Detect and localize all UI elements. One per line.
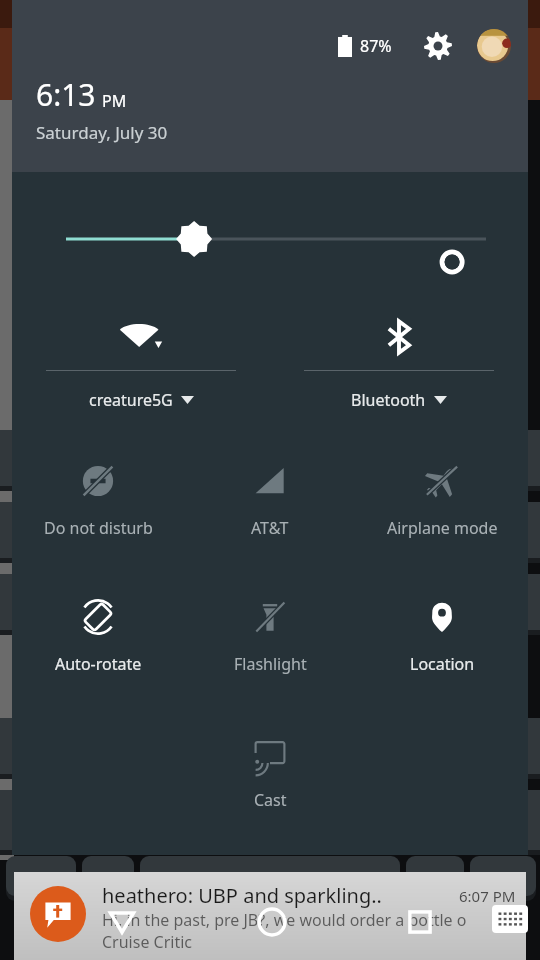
button[interactable]: Airplane mode: [356, 455, 528, 561]
staticText: Auto-rotate: [55, 653, 142, 675]
staticText: 87%: [360, 35, 392, 57]
button[interactable]: Settings: [418, 26, 458, 66]
button[interactable]: Switch keyboard: [492, 905, 528, 933]
button[interactable]: Auto-rotate: [12, 591, 184, 697]
button[interactable]: Cast: [184, 727, 356, 833]
button[interactable]: AT&T: [184, 455, 356, 561]
button[interactable]: Do not disturb: [12, 455, 184, 561]
staticText: Cast: [254, 789, 287, 811]
staticText: creature5G: [89, 389, 173, 411]
button[interactable]: Brightness: [12, 216, 528, 262]
staticText: heathero: UBP and sparkling..: [102, 882, 382, 909]
button[interactable]: Bluetooth: [270, 310, 528, 411]
staticText: Location: [410, 653, 475, 675]
staticText: Airplane mode: [387, 517, 498, 539]
button[interactable]: User profile: [474, 26, 514, 66]
staticText: 6:07 PM: [459, 886, 516, 906]
staticText: AT&T: [251, 517, 289, 539]
button[interactable]: Back: [106, 906, 138, 938]
button[interactable]: Battery 87 percent: [334, 35, 396, 57]
staticText: Flashlight: [234, 653, 307, 675]
button[interactable]: Location: [356, 591, 528, 697]
button[interactable]: Flashlight: [184, 591, 356, 697]
button[interactable]: Recent apps: [406, 908, 434, 936]
staticText: Hi, in the past, pre JB?, we would order…: [102, 909, 467, 931]
staticText: PM: [102, 90, 127, 112]
staticText: Saturday, July 30: [36, 121, 168, 144]
staticText: 6:13: [36, 74, 96, 115]
button[interactable]: Home: [255, 905, 289, 939]
staticText: Do not disturb: [44, 517, 153, 539]
staticText: Cruise Critic: [102, 931, 193, 953]
staticText: Bluetooth: [351, 389, 426, 411]
button[interactable]: 6:13: [36, 74, 168, 144]
button[interactable]: creature5G: [12, 310, 270, 411]
button[interactable]: heathero: UBP and sparkling..: [14, 872, 526, 960]
